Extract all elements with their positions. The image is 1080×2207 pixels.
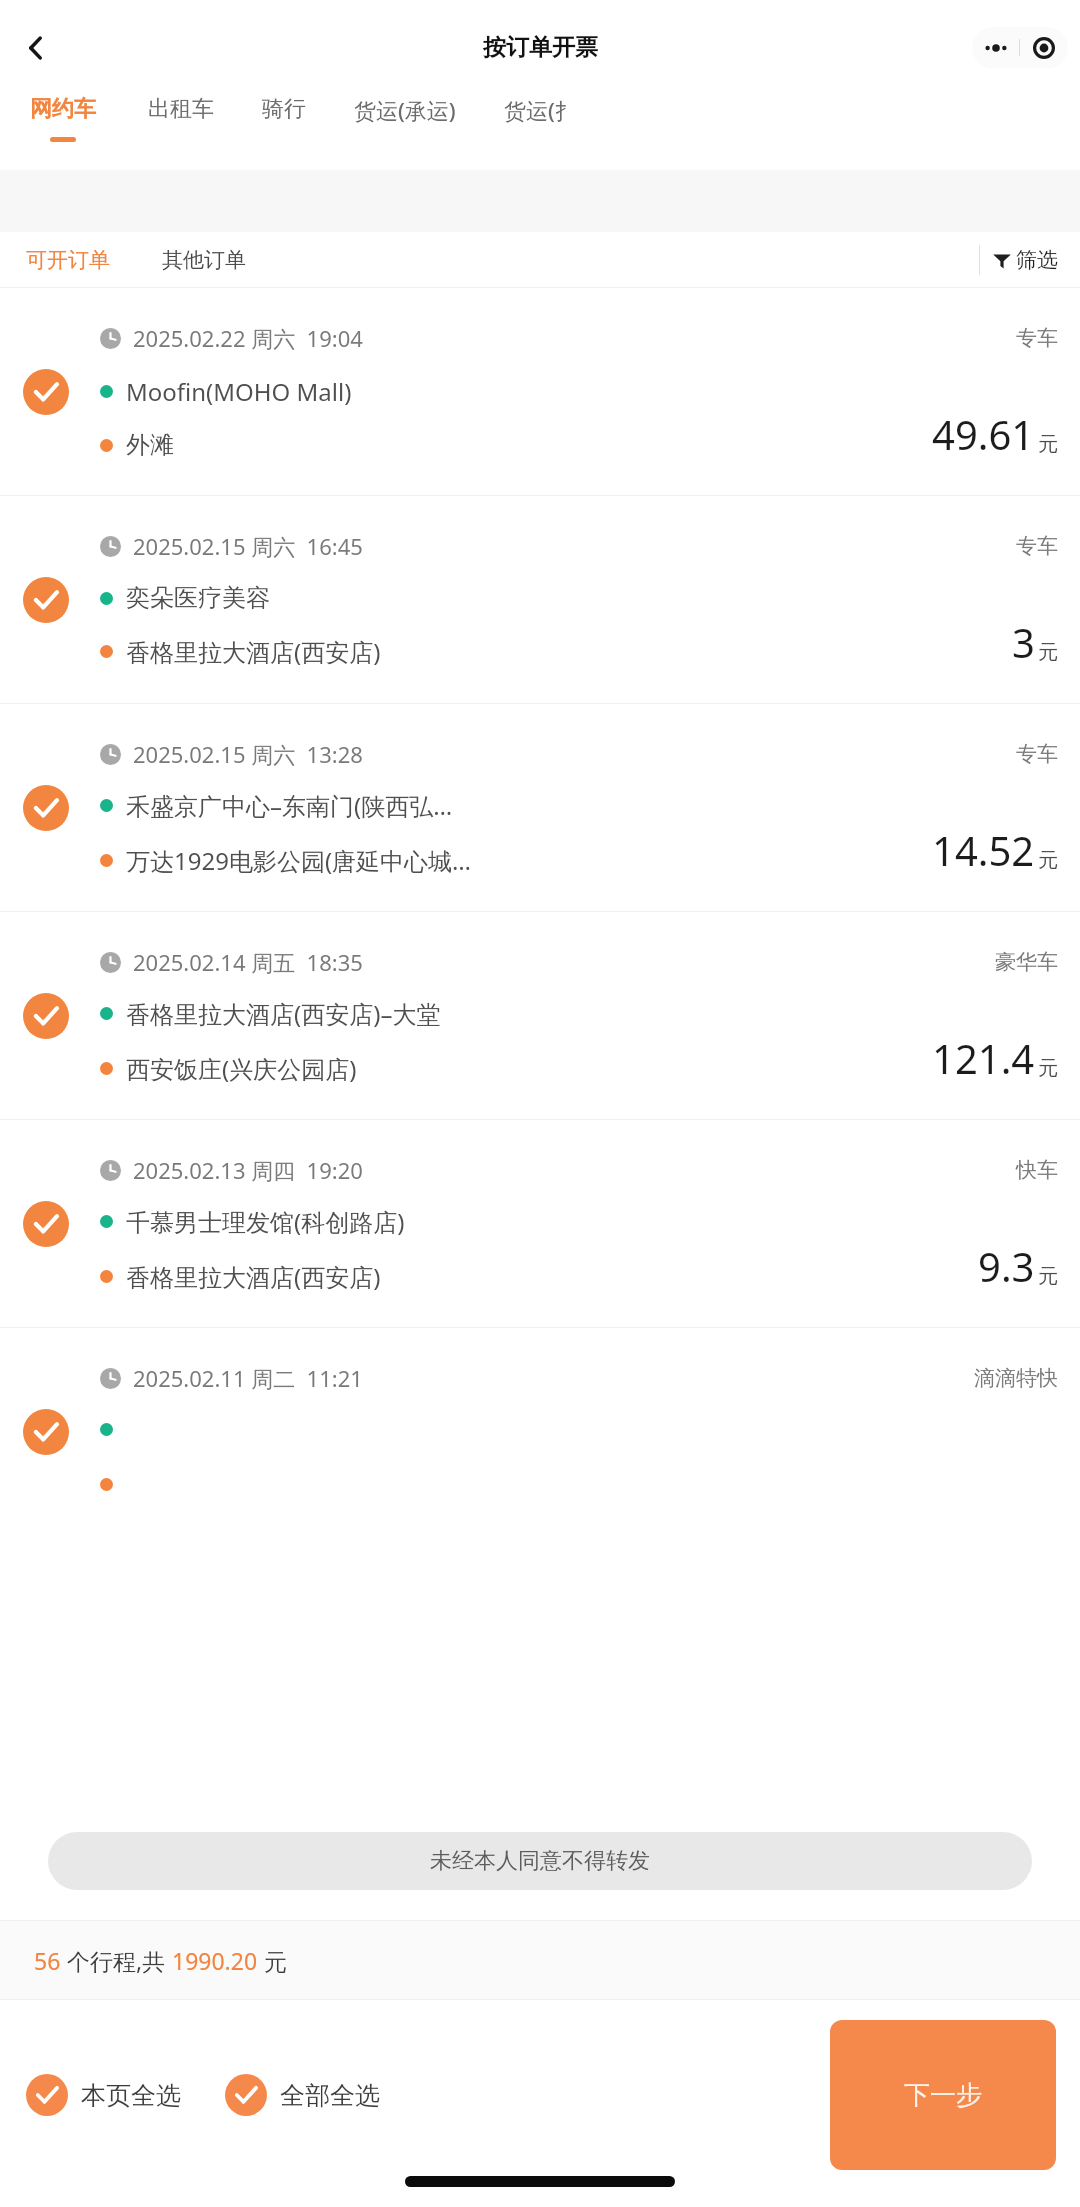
button[interactable]: Select order <box>0 288 1080 495</box>
staticText: 按订单开票 <box>483 33 598 62</box>
button[interactable]: 本页全选 <box>26 2064 181 2126</box>
staticText: 其他订单 <box>162 247 246 273</box>
staticText: 2025.02.13 周四 19:20 <box>133 1155 363 1185</box>
button[interactable]: 货运(承运) <box>354 95 504 125</box>
staticText: 元 <box>1038 848 1058 873</box>
staticText: 货运(承运) <box>354 95 456 125</box>
staticText: 禾盛京广中心–东南门(陕西弘… <box>126 789 453 822</box>
button[interactable]: Select order <box>18 988 73 1043</box>
staticText: 元 <box>1038 1264 1058 1289</box>
staticText: 2025.02.14 周五 18:35 <box>133 947 363 977</box>
staticText: 下一步 <box>904 2079 982 2112</box>
staticText: 元 <box>258 1945 287 1976</box>
button[interactable]: Select order <box>0 496 1080 703</box>
staticText: 14.52 <box>932 823 1035 877</box>
staticText: 2025.02.15 周六 16:45 <box>133 531 363 561</box>
button[interactable]: More <box>972 27 1019 68</box>
staticText: Moofin(MOHO Mall) <box>126 375 352 408</box>
staticText: 西安饭庄(兴庆公园店) <box>126 1052 357 1085</box>
staticText: 元 <box>1038 640 1058 665</box>
button[interactable]: 下一步 <box>830 2020 1056 2170</box>
staticText: 1990.20 <box>172 1945 258 1976</box>
button[interactable]: 货运(扌 <box>504 95 625 125</box>
staticText: 未经本人同意不得转发 <box>430 1847 650 1875</box>
button[interactable]: 全部全选 <box>225 2064 380 2126</box>
staticText: 奕朵医疗美容 <box>126 583 270 613</box>
button[interactable]: 骑行 <box>262 95 354 123</box>
button[interactable]: 网约车 <box>30 95 148 142</box>
button[interactable]: Select order <box>0 912 1080 1119</box>
staticText: 本页全选 <box>81 2080 181 2111</box>
staticText: 快车 <box>1016 1157 1058 1183</box>
staticText: 豪华车 <box>995 949 1058 975</box>
staticText: 元 <box>1038 432 1058 457</box>
staticText: 专车 <box>1016 325 1058 351</box>
button[interactable]: Select order <box>18 1404 73 1459</box>
staticText: 香格里拉大酒店(西安店) <box>126 1260 381 1293</box>
staticText: 121.4 <box>932 1031 1035 1085</box>
button[interactable]: Select order <box>18 780 73 835</box>
button[interactable]: Select order <box>18 364 73 419</box>
staticText: 2025.02.15 周六 13:28 <box>133 739 363 769</box>
button[interactable]: Close <box>1020 27 1068 68</box>
staticText: 筛选 <box>1016 247 1058 273</box>
staticText: 2025.02.22 周六 19:04 <box>133 323 363 353</box>
staticText: 49.61 <box>932 407 1035 461</box>
button[interactable]: Select order <box>0 1120 1080 1327</box>
button[interactable]: Back <box>8 20 64 76</box>
button[interactable]: 筛选 <box>980 247 1058 273</box>
button[interactable]: Select order <box>0 704 1080 911</box>
staticText: 专车 <box>1016 741 1058 767</box>
button[interactable]: Select order <box>18 572 73 627</box>
staticText: 香格里拉大酒店(西安店) <box>126 635 381 668</box>
staticText: 出租车 <box>148 95 214 123</box>
staticText: 万达1929电影公园(唐延中心城… <box>126 844 472 877</box>
staticText: 千慕男士理发馆(科创路店) <box>126 1205 405 1238</box>
staticText: 3 <box>1012 615 1035 669</box>
staticText: 9.3 <box>978 1239 1035 1293</box>
button[interactable]: 其他订单 <box>158 243 250 277</box>
staticText: 56 <box>34 1945 61 1976</box>
staticText: 网约车 <box>30 95 96 123</box>
staticText: 专车 <box>1016 533 1058 559</box>
staticText: 香格里拉大酒店(西安店)–大堂 <box>126 997 441 1030</box>
button[interactable]: Select order <box>0 1328 1080 1535</box>
button[interactable]: Select order <box>18 1196 73 1251</box>
staticText: 可开订单 <box>26 247 110 273</box>
staticText: 骑行 <box>262 95 306 123</box>
staticText: 2025.02.11 周二 11:21 <box>133 1363 363 1393</box>
staticText: 元 <box>1038 1056 1058 1081</box>
staticText: 个行程,共 <box>61 1945 172 1976</box>
staticText: 外滩 <box>126 430 174 460</box>
staticText: 全部全选 <box>280 2080 380 2111</box>
button[interactable]: 出租车 <box>148 95 262 123</box>
staticText: 货运(扌 <box>504 95 577 125</box>
button[interactable]: 可开订单 <box>22 243 114 277</box>
staticText: 滴滴特快 <box>974 1365 1058 1391</box>
